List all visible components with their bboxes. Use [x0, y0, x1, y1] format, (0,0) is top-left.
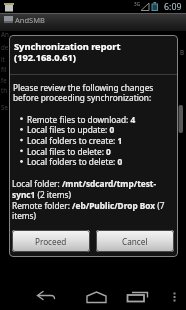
- staticText: Local files to delete: 0: [27, 146, 111, 157]
- staticText: Se: [1, 103, 8, 111]
- staticText: B: [180, 48, 185, 56]
- staticText: fe: [1, 76, 7, 84]
- staticText: An: [1, 30, 9, 38]
- staticText: fil: [1, 65, 7, 73]
- staticText: Remote files to download: 4: [27, 114, 136, 125]
- staticText: Local folders to delete: 0: [27, 156, 123, 167]
- button[interactable]: [123, 283, 153, 309]
- staticText: Please review the following changes: [13, 82, 154, 93]
- staticText: Cancel: [122, 236, 148, 247]
- staticText: items): [12, 210, 37, 221]
- staticText: Local folder: /mnt/sdcard/tmp/test-: [12, 178, 157, 189]
- staticText: Proceed: [35, 236, 67, 247]
- staticText: 3G: [134, 1, 140, 7]
- staticText: th: [1, 86, 8, 94]
- button[interactable]: [31, 281, 61, 309]
- staticText: sync1 (2 items): [12, 189, 71, 200]
- button[interactable]: Cancel: [96, 230, 174, 252]
- staticText: before proceeding synchronization:: [13, 92, 152, 103]
- staticText: (192.168.0.61): [14, 51, 77, 64]
- staticText: de: [1, 43, 9, 51]
- button[interactable]: [167, 284, 182, 308]
- staticText: Synchronization report: [14, 40, 121, 53]
- staticText: Local folders to create: 1: [27, 135, 123, 146]
- button[interactable]: Proceed: [12, 230, 90, 252]
- staticText: lt: [1, 55, 5, 63]
- staticText: 6:09: [164, 1, 182, 13]
- staticText: Remote folder: /eb/Public/Drop Box (7: [12, 200, 165, 211]
- button[interactable]: [82, 283, 112, 309]
- staticText: AndSMB: [15, 15, 45, 25]
- staticText: Local files to update: 0: [27, 124, 115, 135]
